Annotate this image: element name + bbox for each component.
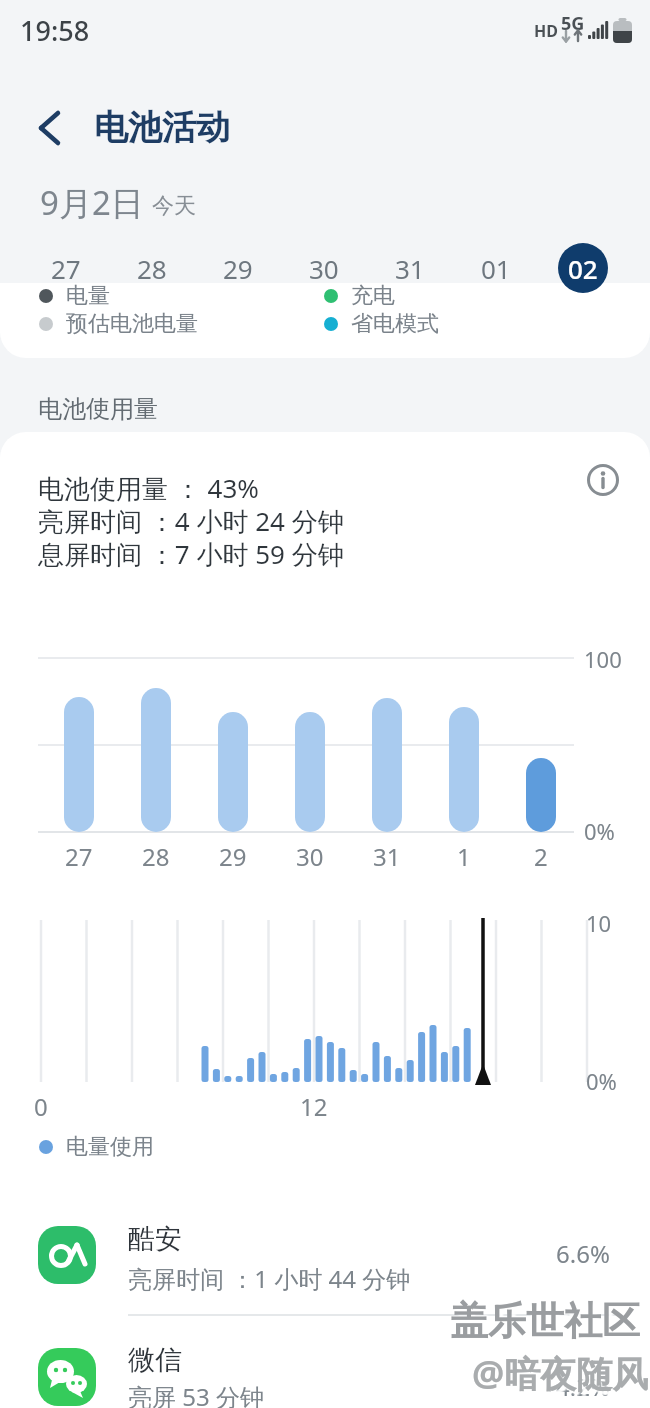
staticText: @暗夜随风 bbox=[472, 1349, 649, 1398]
staticText: 0 bbox=[34, 1090, 48, 1118]
staticText: 31 bbox=[395, 251, 425, 286]
staticText: 4.2% bbox=[556, 1370, 610, 1402]
staticText: 微信 bbox=[128, 1343, 182, 1377]
staticText: 预估电池电量 bbox=[66, 310, 198, 338]
button[interactable]: 30 bbox=[289, 245, 359, 291]
button[interactable] bbox=[583, 460, 623, 500]
staticText: 27 bbox=[65, 840, 93, 868]
staticText: 9月2日 bbox=[40, 180, 144, 224]
staticText: 今天 bbox=[152, 192, 196, 220]
button[interactable]: 酷安 bbox=[0, 1205, 650, 1311]
staticText: 30 bbox=[296, 840, 324, 868]
staticText: 0% bbox=[586, 1066, 617, 1094]
staticText: HD bbox=[534, 20, 558, 42]
button[interactable]: 27 bbox=[31, 245, 101, 291]
button[interactable] bbox=[22, 100, 80, 156]
staticText: 电量使用 bbox=[66, 1133, 154, 1161]
staticText: 亮屏 53 分钟 bbox=[128, 1380, 264, 1408]
staticText: 19:58 bbox=[20, 12, 90, 49]
staticText: 盖乐世社区 bbox=[450, 1297, 640, 1345]
staticText: 电池活动 bbox=[94, 106, 230, 149]
staticText: 电池使用量 bbox=[38, 394, 158, 424]
button[interactable]: 29 bbox=[203, 245, 273, 291]
staticText: 31 bbox=[373, 840, 401, 868]
button[interactable]: 28 bbox=[117, 245, 187, 291]
staticText: 5G bbox=[561, 11, 585, 31]
staticText: 12 bbox=[300, 1090, 328, 1118]
staticText: 6.6% bbox=[556, 1237, 610, 1269]
staticText: 29 bbox=[223, 251, 253, 286]
staticText: 28 bbox=[137, 251, 167, 286]
staticText: 息屏时间 ：7 小时 59 分钟 bbox=[38, 536, 344, 568]
button[interactable]: 微信 bbox=[0, 1332, 650, 1408]
staticText: 充电 bbox=[351, 282, 395, 310]
staticText: 02 bbox=[568, 251, 598, 286]
staticText: 亮屏时间 ：1 小时 44 分钟 bbox=[128, 1262, 411, 1294]
button[interactable]: 01 bbox=[461, 245, 531, 291]
staticText: 电池使用量 ： 43% bbox=[38, 470, 259, 502]
button[interactable]: 02 bbox=[558, 243, 608, 293]
staticText: 30 bbox=[309, 251, 339, 286]
staticText: 亮屏时间 ：4 小时 24 分钟 bbox=[38, 503, 344, 535]
staticText: 1 bbox=[457, 840, 471, 868]
staticText: 28 bbox=[142, 840, 170, 868]
button[interactable]: 31 bbox=[375, 245, 445, 291]
staticText: 省电模式 bbox=[351, 310, 439, 338]
staticText: 0% bbox=[584, 816, 615, 844]
staticText: 29 bbox=[219, 840, 247, 868]
staticText: 电量 bbox=[66, 282, 110, 310]
staticText: 2 bbox=[534, 840, 548, 868]
staticText: 10 bbox=[586, 908, 612, 936]
staticText: 01 bbox=[481, 251, 511, 286]
staticText: 酷安 bbox=[128, 1222, 182, 1256]
staticText: 27 bbox=[51, 251, 81, 286]
staticText: 100 bbox=[584, 644, 622, 672]
